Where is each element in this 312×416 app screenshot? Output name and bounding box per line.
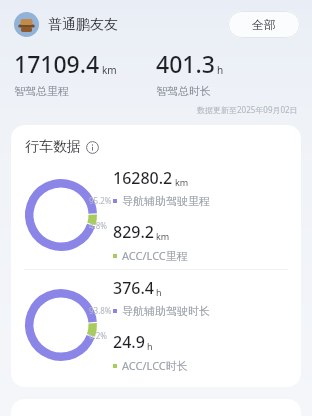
staticText: 93.8% [89,305,112,316]
staticText: 行车数据 [25,138,81,156]
staticText: 829.2 [113,221,154,243]
staticText: ACC/LCC时长 [122,358,188,373]
staticText: 导航辅助驾驶时长 [122,304,210,318]
staticText: h [147,340,153,352]
staticText: 401.3 [156,48,215,79]
staticText: h [156,286,162,298]
staticText: km [156,230,170,242]
staticText: km [102,63,117,77]
staticText: 17109.4 [14,48,100,79]
staticText: 全部 [252,17,276,32]
staticText: 95.2% [89,195,112,206]
staticText: 4.8% [89,220,107,231]
staticText: ACC/LCC里程 [122,248,188,263]
button[interactable]: Info about driving data [86,141,99,154]
staticText: 6.2% [89,330,107,341]
button[interactable]: 行车数据 [11,125,301,387]
staticText: 数据更新至2025年09月02日 [197,104,298,115]
staticText: 智驾总时长 [156,84,211,98]
staticText: 普通鹏友友 [48,16,118,34]
button[interactable]: 全部 [228,11,300,38]
staticText: 16280.2 [113,167,173,189]
staticText: 24.9 [113,331,145,353]
staticText: 智驾总里程 [14,84,69,98]
staticText: 导航辅助驾驶里程 [122,194,210,208]
staticText: h [217,63,224,77]
staticText: km [175,176,189,188]
staticText: 376.4 [113,277,154,299]
button[interactable]: Profile avatar [14,12,39,37]
